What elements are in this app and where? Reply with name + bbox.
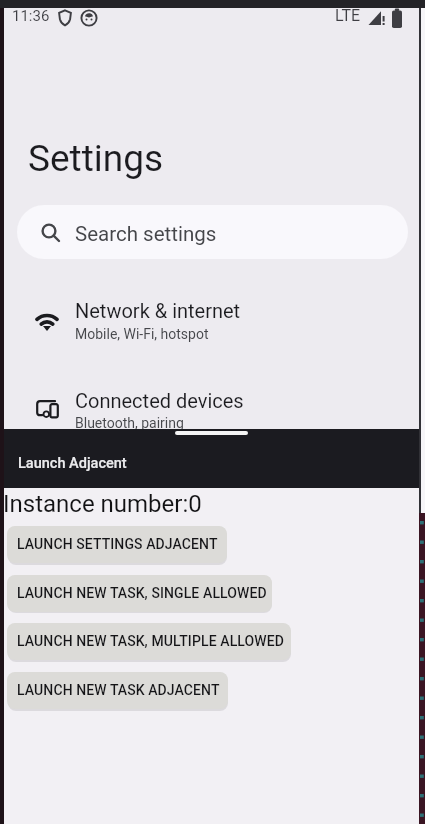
staticText: Launch Adjacent — [18, 455, 127, 472]
staticText: LAUNCH SETTINGS ADJACENT — [17, 536, 218, 552]
staticText: LAUNCH NEW TASK, SINGLE ALLOWED — [17, 585, 267, 601]
staticText: LAUNCH NEW TASK ADJACENT — [17, 682, 220, 698]
staticText: Network & internet — [75, 299, 241, 322]
staticText: Mobile, Wi‑Fi, hotspot — [75, 326, 209, 342]
staticText: LAUNCH NEW TASK, MULTIPLE ALLOWED — [17, 633, 285, 649]
staticText: Connected devices — [75, 389, 244, 412]
staticText: Settings — [28, 137, 164, 180]
staticText: 11:36 — [12, 7, 50, 25]
button[interactable]: LAUNCH NEW TASK ADJACENT — [7, 672, 228, 709]
staticText: Bluetooth, pairing — [75, 415, 184, 431]
staticText: LTE — [335, 6, 361, 25]
button[interactable]: Search settings — [17, 205, 408, 259]
button[interactable]: Connected devices — [0, 367, 420, 455]
button[interactable]: Network & internet — [0, 277, 420, 365]
button[interactable]: LAUNCH NEW TASK, SINGLE ALLOWED — [7, 575, 272, 612]
button[interactable]: LAUNCH NEW TASK, MULTIPLE ALLOWED — [7, 623, 291, 660]
staticText: Search settings — [75, 222, 217, 246]
button[interactable]: LAUNCH SETTINGS ADJACENT — [7, 526, 227, 563]
staticText: Instance number:0 — [3, 490, 202, 518]
